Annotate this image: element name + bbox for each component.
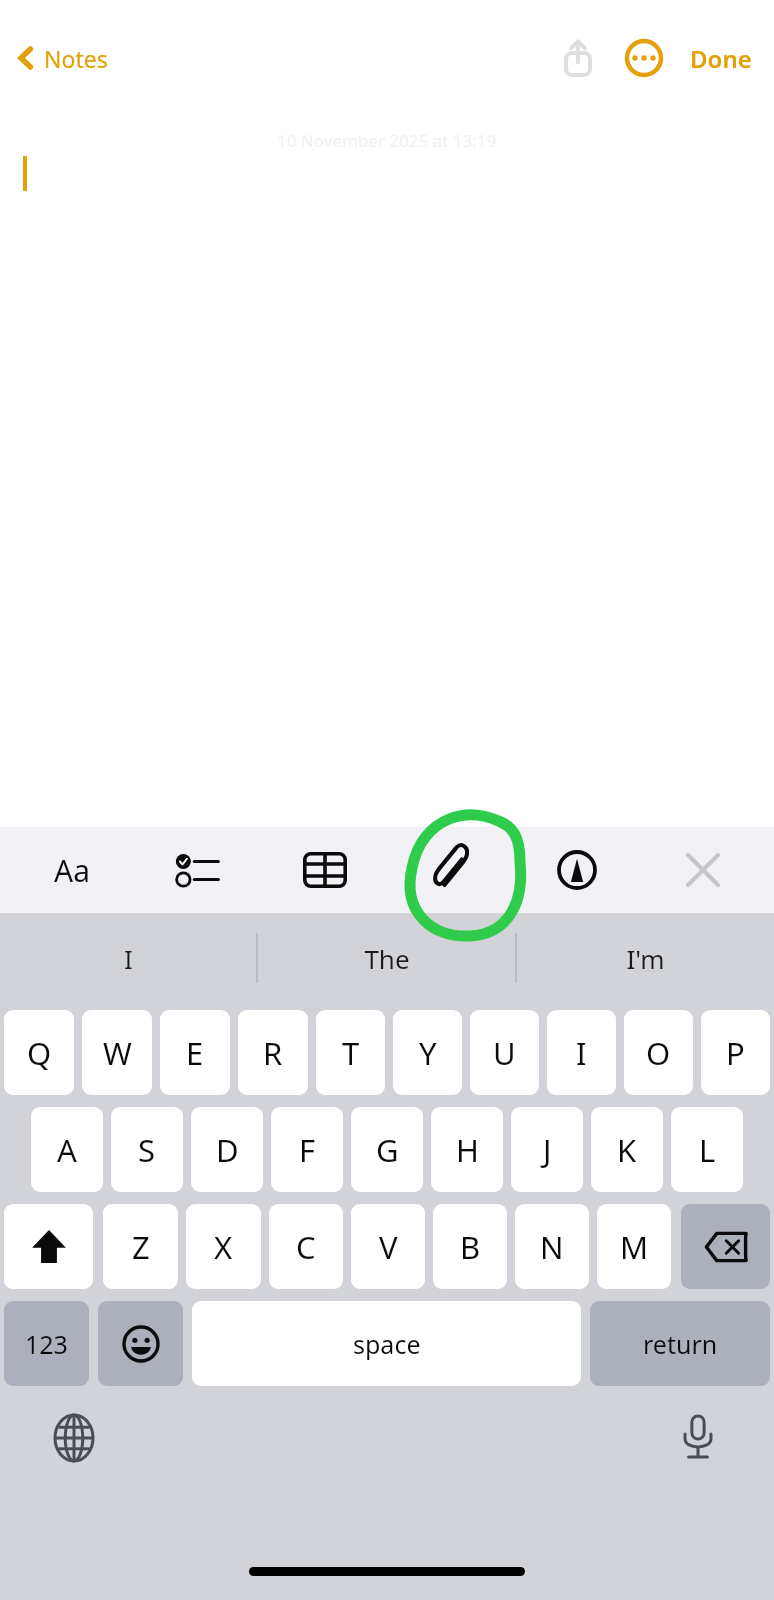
staticText: P: [726, 1032, 745, 1074]
staticText: I'm: [626, 941, 665, 976]
button[interactable]: Y: [393, 1010, 462, 1095]
button[interactable]: F: [271, 1107, 343, 1192]
button[interactable]: Dictate: [668, 1408, 728, 1468]
button[interactable]: Q: [4, 1010, 74, 1095]
staticText: M: [620, 1226, 649, 1268]
staticText: S: [138, 1129, 156, 1171]
staticText: V: [379, 1226, 398, 1268]
staticText: return: [643, 1327, 718, 1361]
button[interactable]: N: [515, 1204, 589, 1289]
staticText: N: [540, 1226, 564, 1268]
staticText: X: [214, 1226, 233, 1268]
button[interactable]: K: [591, 1107, 663, 1192]
button[interactable]: P: [701, 1010, 770, 1095]
button[interactable]: Change keyboard: [44, 1408, 104, 1468]
button[interactable]: Markup: [514, 827, 640, 913]
staticText: I: [576, 1032, 587, 1074]
staticText: The: [364, 941, 410, 976]
button[interactable]: T: [316, 1010, 385, 1095]
button[interactable]: I'm: [517, 913, 774, 1003]
button[interactable]: D: [191, 1107, 263, 1192]
staticText: Z: [132, 1226, 150, 1268]
staticText: A: [57, 1129, 77, 1171]
button[interactable]: Shift: [4, 1204, 93, 1289]
button[interactable]: Share: [550, 30, 606, 86]
button[interactable]: Emoji: [98, 1301, 183, 1386]
button[interactable]: Delete: [681, 1204, 770, 1289]
staticText: J: [543, 1129, 552, 1171]
button[interactable]: space: [192, 1301, 581, 1386]
button[interactable]: return: [590, 1301, 770, 1386]
button[interactable]: More options: [616, 30, 672, 86]
button[interactable]: S: [111, 1107, 183, 1192]
staticText: H: [456, 1129, 479, 1171]
staticText: L: [699, 1129, 716, 1171]
button[interactable]: The: [258, 913, 515, 1003]
staticText: F: [299, 1129, 316, 1171]
staticText: W: [103, 1032, 132, 1074]
staticText: Y: [419, 1032, 437, 1074]
staticText: Q: [27, 1032, 52, 1074]
staticText: G: [376, 1129, 399, 1171]
staticText: Aa: [54, 850, 90, 891]
staticText: U: [493, 1032, 516, 1074]
button[interactable]: C: [269, 1204, 343, 1289]
staticText: E: [186, 1032, 204, 1074]
button[interactable]: L: [671, 1107, 743, 1192]
button[interactable]: O: [624, 1010, 693, 1095]
staticText: R: [263, 1032, 283, 1074]
button[interactable]: Numbers: [4, 1301, 89, 1386]
button[interactable]: W: [82, 1010, 152, 1095]
button[interactable]: I: [0, 913, 256, 1003]
staticText: K: [617, 1129, 637, 1171]
staticText: Notes: [44, 43, 108, 74]
button[interactable]: X: [186, 1204, 261, 1289]
button[interactable]: U: [470, 1010, 539, 1095]
button[interactable]: J: [511, 1107, 583, 1192]
button[interactable]: Z: [103, 1204, 178, 1289]
button[interactable]: M: [597, 1204, 671, 1289]
button[interactable]: V: [351, 1204, 425, 1289]
button[interactable]: G: [351, 1107, 423, 1192]
staticText: Done: [690, 42, 752, 75]
staticText: C: [296, 1226, 316, 1268]
staticText: I: [124, 941, 133, 976]
button[interactable]: Done: [676, 34, 766, 82]
button[interactable]: Attach: [388, 827, 514, 913]
staticText: 123: [25, 1327, 68, 1361]
staticText: 10 November 2025 at 13:19: [277, 129, 497, 152]
staticText: T: [342, 1032, 360, 1074]
button[interactable]: B: [433, 1204, 507, 1289]
staticText: B: [460, 1226, 481, 1268]
button[interactable]: Close keyboard: [640, 827, 766, 913]
button[interactable]: Table: [262, 827, 388, 913]
button[interactable]: E: [160, 1010, 230, 1095]
button[interactable]: R: [238, 1010, 308, 1095]
staticText: space: [353, 1327, 421, 1361]
button[interactable]: Notes: [0, 34, 118, 82]
staticText: O: [646, 1032, 671, 1074]
button[interactable]: I: [547, 1010, 616, 1095]
button[interactable]: Checklist: [135, 827, 262, 913]
button[interactable]: Format text: [8, 827, 135, 913]
button[interactable]: H: [431, 1107, 503, 1192]
button[interactable]: A: [31, 1107, 103, 1192]
staticText: D: [216, 1129, 239, 1171]
